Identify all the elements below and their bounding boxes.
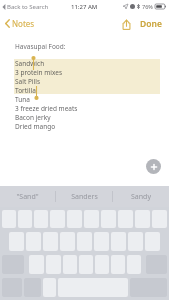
staticText: Salt Pills bbox=[15, 77, 41, 86]
button[interactable]: Add item bbox=[146, 159, 161, 174]
staticText: 3 freeze dried meats bbox=[15, 104, 78, 113]
staticText: Tortilla bbox=[15, 86, 36, 95]
staticText: Notes bbox=[12, 18, 35, 29]
button[interactable]: "Sand" bbox=[0, 186, 55, 207]
staticText: Done bbox=[140, 18, 162, 30]
staticText: Dried mango bbox=[15, 122, 56, 131]
button[interactable]: Sandy bbox=[113, 186, 169, 207]
staticText: "Sand" bbox=[16, 192, 39, 202]
button[interactable]: Notes bbox=[0, 15, 41, 32]
staticText: Tuna bbox=[15, 95, 30, 104]
staticText: Back to Search bbox=[7, 3, 49, 11]
staticText: Sandwich bbox=[15, 59, 45, 68]
staticText: 11:27 AM bbox=[71, 3, 98, 11]
staticText: 76% bbox=[142, 3, 153, 10]
button[interactable]: Share bbox=[119, 17, 134, 32]
staticText: Havasupai Food: bbox=[15, 42, 66, 51]
staticText: Sandy bbox=[131, 192, 151, 202]
staticText: Bacon jerky bbox=[15, 113, 51, 122]
button[interactable]: Done bbox=[137, 15, 165, 33]
staticText: Sanders bbox=[71, 192, 98, 202]
button[interactable]: Back to Search bbox=[2, 3, 49, 11]
staticText: 3 protein mixes bbox=[15, 68, 63, 77]
button[interactable]: Sanders bbox=[56, 186, 112, 207]
